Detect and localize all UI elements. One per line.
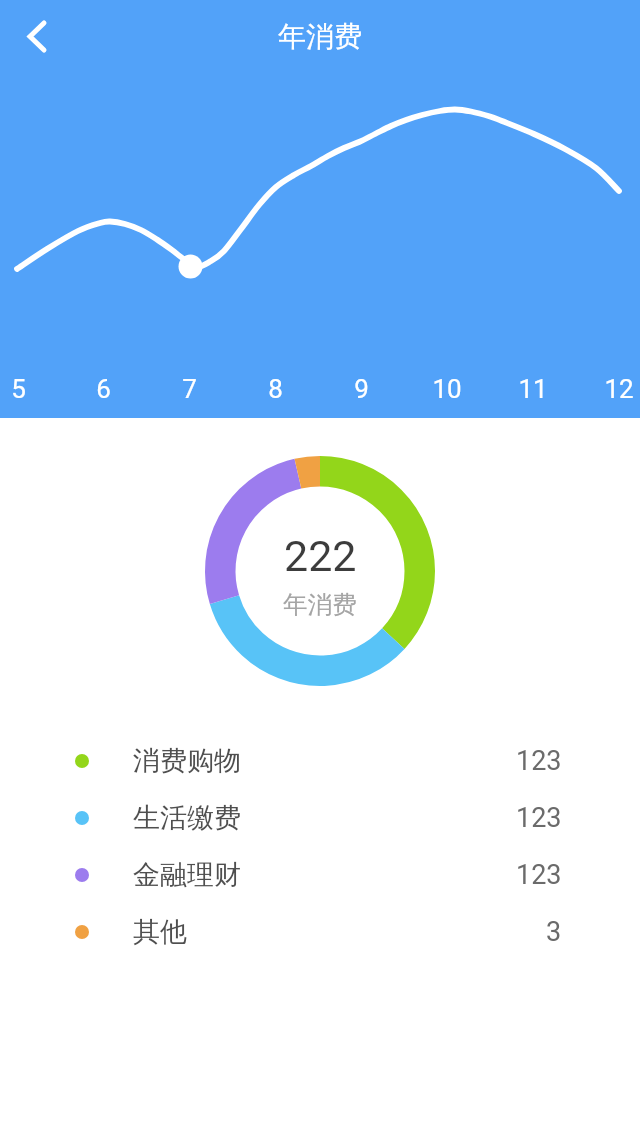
staticText: 年消费 [278, 19, 362, 54]
staticText: 年消费 [283, 589, 357, 620]
staticText: 123 [516, 859, 562, 891]
staticText: 10 [432, 374, 462, 404]
button[interactable]: 生活缴费 [0, 789, 640, 846]
staticText: 5 [11, 374, 26, 404]
staticText: 222 [284, 531, 357, 581]
button[interactable]: 消费购物 [0, 732, 640, 789]
staticText: 8 [268, 374, 283, 404]
staticText: 6 [96, 374, 111, 404]
staticText: 7 [182, 374, 197, 404]
staticText: 生活缴费 [133, 801, 241, 835]
button[interactable] [8, 7, 66, 65]
staticText: 其他 [133, 915, 187, 949]
staticText: 12 [604, 374, 634, 404]
staticText: 消费购物 [133, 744, 241, 778]
staticText: 3 [546, 916, 562, 948]
staticText: 11 [518, 374, 548, 404]
staticText: 金融理财 [133, 858, 241, 892]
button[interactable]: 其他 [0, 903, 640, 960]
staticText: 123 [516, 745, 562, 777]
staticText: 123 [516, 802, 562, 834]
staticText: 9 [354, 374, 369, 404]
button[interactable]: 金融理财 [0, 846, 640, 903]
